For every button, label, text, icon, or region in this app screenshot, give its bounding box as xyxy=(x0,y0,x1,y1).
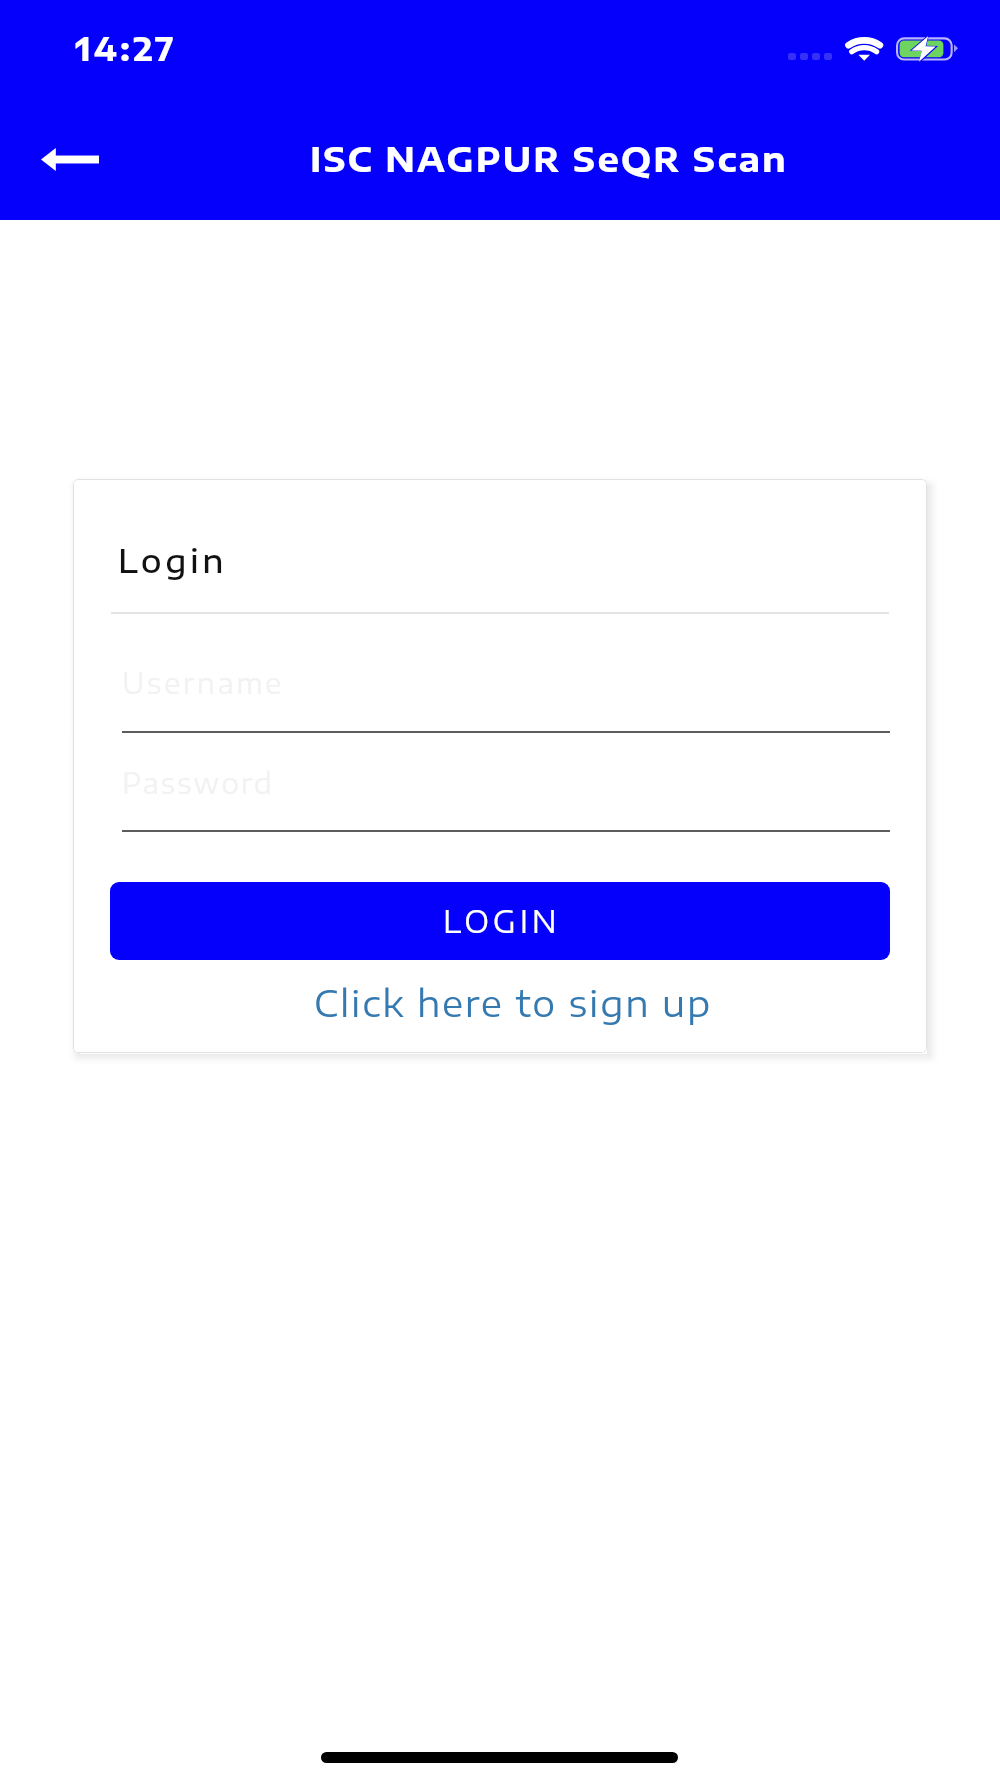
staticText: 14:27 xyxy=(75,28,177,68)
staticText: Username xyxy=(122,665,284,700)
button[interactable]: LOGIN xyxy=(110,882,890,960)
staticText: Login xyxy=(118,540,228,580)
staticText: Password xyxy=(122,765,274,800)
button[interactable]: Click here to sign up xyxy=(213,970,813,1034)
staticText: ISC NAGPUR SeQR Scan xyxy=(310,137,788,180)
staticText: Click here to sign up xyxy=(314,980,713,1025)
button[interactable]: Back xyxy=(12,110,128,208)
staticText: LOGIN xyxy=(443,902,561,939)
